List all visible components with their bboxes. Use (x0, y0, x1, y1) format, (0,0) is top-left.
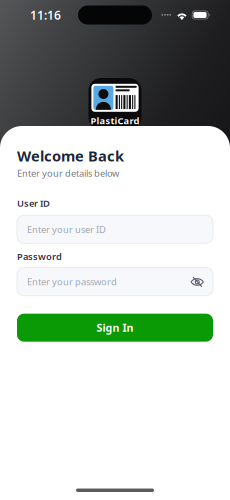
staticText: 11:16 (30, 7, 61, 23)
staticText: PlastiCard (90, 114, 139, 127)
staticText: Welcome Back (17, 146, 124, 165)
button[interactable]: Sign In (17, 314, 213, 342)
button[interactable]: Enter your user ID (17, 215, 213, 243)
staticText: Sign In (96, 321, 133, 335)
staticText: Enter your details below (17, 167, 119, 179)
staticText: Enter your password (27, 275, 117, 288)
staticText: User ID (17, 197, 50, 209)
button[interactable]: Enter your password (17, 268, 213, 296)
staticText: Enter your user ID (27, 223, 106, 235)
staticText: Password (17, 250, 62, 263)
